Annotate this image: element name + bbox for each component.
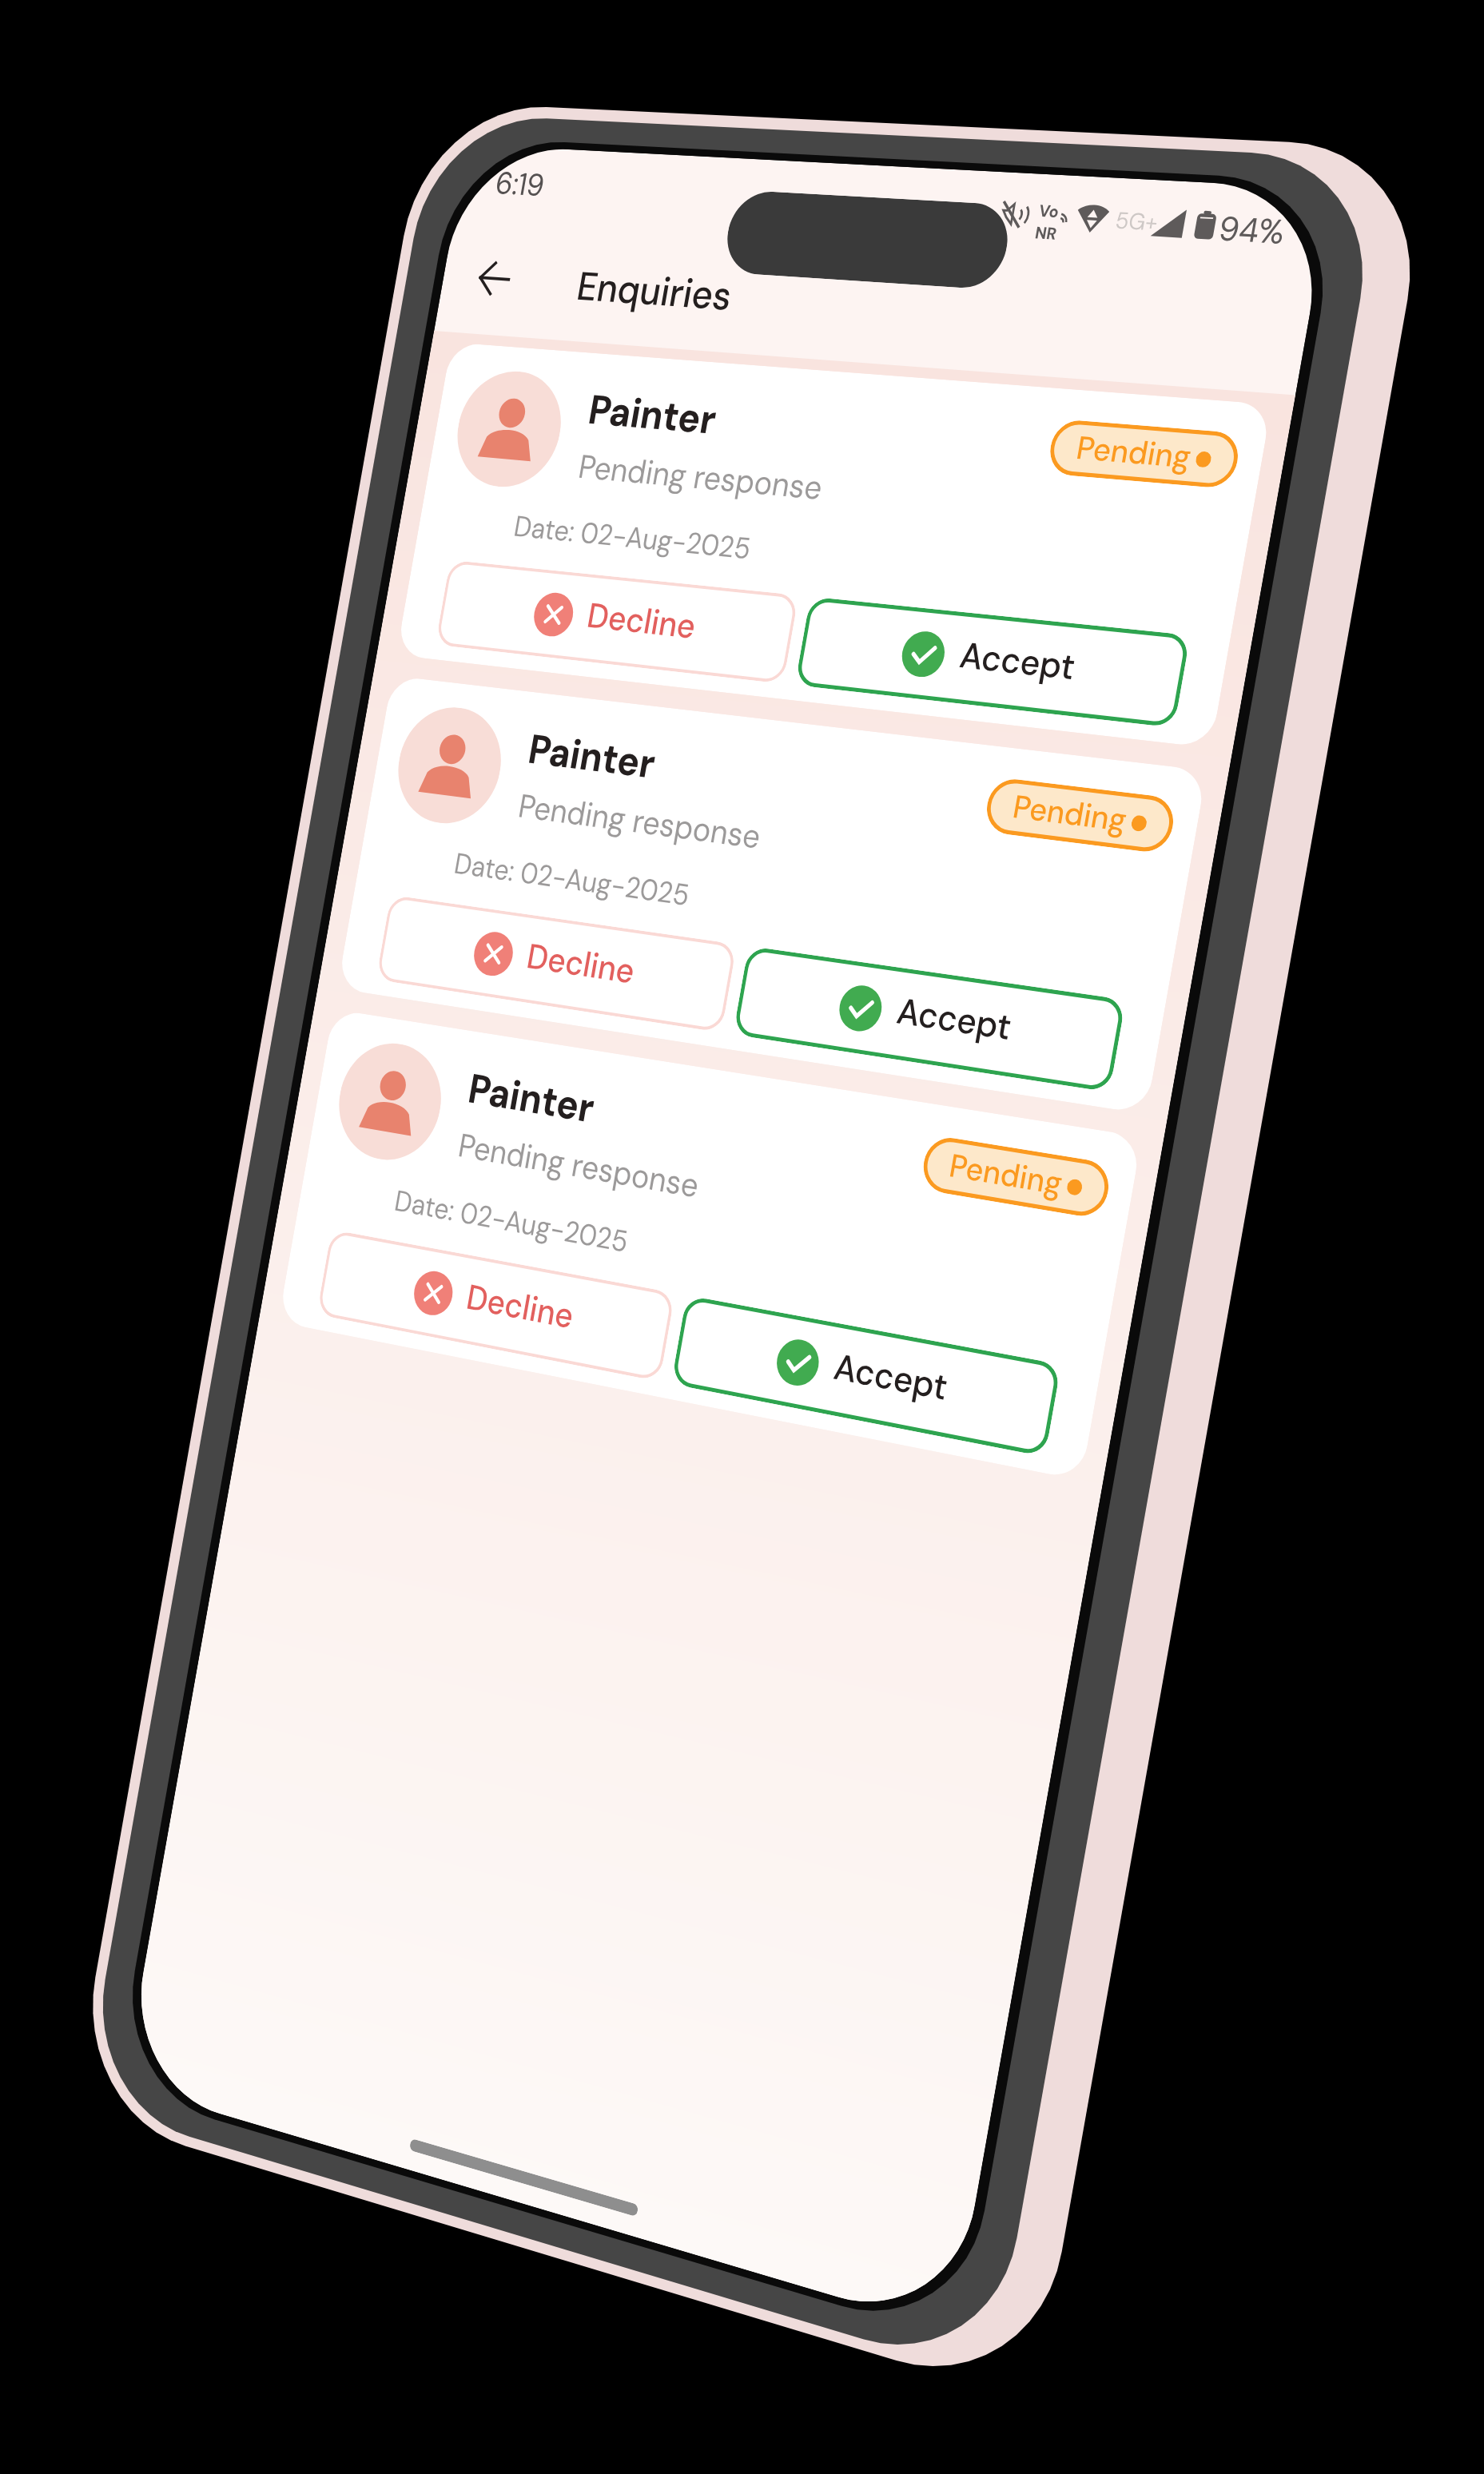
button[interactable]: Decline (67, 1132, 467, 1220)
staticText: Pending (733, 593, 849, 633)
button[interactable]: Painter (23, 557, 921, 885)
staticText: Pending (733, 943, 849, 983)
staticText: Painter (197, 938, 343, 992)
staticText: Pending response (197, 652, 472, 695)
staticText: Accept (650, 1151, 770, 1196)
staticText: Decline (237, 451, 360, 496)
staticText: Decline (237, 801, 360, 846)
button[interactable]: Pending (706, 237, 897, 290)
staticText: Pending response (197, 302, 472, 345)
button[interactable]: Pending (706, 937, 897, 990)
staticText: Decline (237, 1151, 360, 1196)
staticText: Date: 02-Aug-2025 (135, 371, 406, 409)
staticText: Date: 02-Aug-2025 (135, 721, 406, 759)
button[interactable]: Painter (23, 907, 921, 1235)
staticText: Pending (733, 243, 849, 283)
staticText: Accept (650, 801, 770, 846)
button[interactable]: Accept (480, 1132, 881, 1220)
button[interactable]: Pending (706, 587, 897, 640)
staticText: Date: 02-Aug-2025 (135, 1071, 406, 1109)
button[interactable]: Accept (480, 782, 881, 870)
staticText: Painter (197, 588, 343, 642)
button[interactable]: Painter (23, 207, 921, 535)
button[interactable]: Accept (480, 432, 881, 520)
staticText: Accept (650, 451, 770, 496)
button[interactable]: Decline (67, 432, 467, 520)
staticText: Pending response (197, 1002, 472, 1045)
button[interactable]: Decline (67, 782, 467, 870)
